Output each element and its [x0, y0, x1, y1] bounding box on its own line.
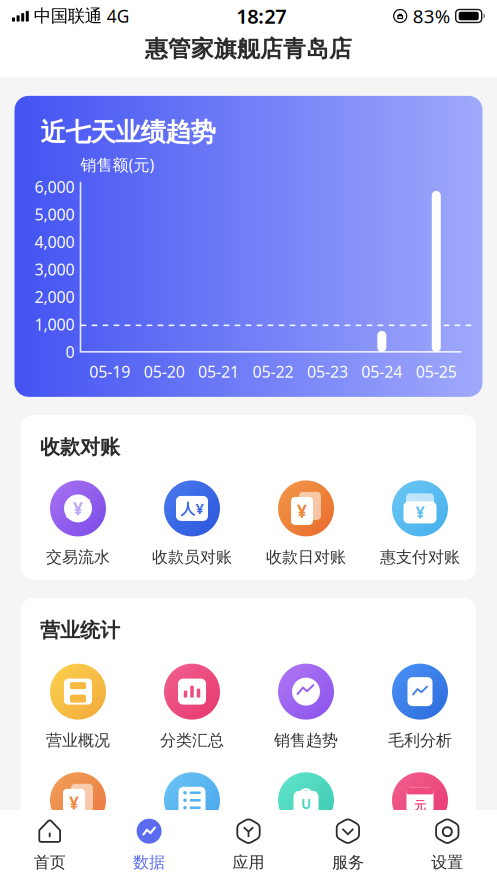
- staticText: 05-24: [361, 361, 402, 382]
- staticText: 05-25: [416, 361, 457, 382]
- staticText: 日报表: [396, 839, 444, 859]
- staticText: 销售额(元): [80, 154, 154, 175]
- staticText: 收款对账: [40, 435, 120, 459]
- staticText: 05-21: [198, 361, 239, 382]
- staticText: 分类汇总: [160, 731, 224, 750]
- staticText: 3,000: [34, 259, 74, 280]
- staticText: 营业统计: [40, 618, 120, 643]
- staticText: 应用: [232, 853, 264, 872]
- staticText: 05-23: [307, 361, 348, 382]
- button[interactable]: 分类汇总: [135, 664, 249, 750]
- staticText: 18:27: [236, 3, 286, 29]
- staticText: 05-19: [89, 361, 130, 382]
- button[interactable]: 营业概况: [21, 664, 135, 750]
- staticText: 首页: [34, 853, 66, 872]
- button[interactable]: 商品统计: [135, 772, 249, 859]
- staticText: 收款员对账: [152, 547, 232, 567]
- staticText: 数据: [133, 853, 165, 872]
- staticText: 05-20: [144, 361, 185, 382]
- button[interactable]: 销售趋势: [249, 664, 363, 750]
- staticText: 2,000: [34, 286, 74, 307]
- button[interactable]: 设置: [398, 807, 497, 883]
- staticText: ¥: [69, 791, 79, 814]
- button[interactable]: 首页: [0, 807, 99, 883]
- staticText: 4,000: [34, 231, 74, 252]
- button[interactable]: 元: [363, 772, 477, 859]
- button[interactable]: 数据: [99, 807, 199, 883]
- staticText: ¥: [73, 497, 83, 520]
- staticText: 收款日对账: [266, 547, 346, 567]
- staticText: 6,000: [34, 176, 74, 197]
- staticText: 商品统计: [160, 839, 224, 859]
- button[interactable]: ¥: [249, 480, 363, 567]
- staticText: 05-22: [252, 361, 293, 382]
- button[interactable]: U: [249, 772, 363, 859]
- staticText: 中国联通: [29, 5, 107, 27]
- staticText: 惠管家旗舰店青岛店: [145, 35, 352, 63]
- staticText: 设置: [431, 853, 463, 872]
- button[interactable]: 应用: [199, 807, 298, 883]
- staticText: 采购统计: [274, 839, 338, 859]
- staticText: 交易流水: [46, 547, 110, 567]
- staticText: ¥: [297, 499, 307, 522]
- staticText: 销售趋势: [274, 731, 338, 750]
- staticText: 5,000: [34, 204, 74, 225]
- staticText: 83%: [408, 4, 456, 28]
- staticText: ¥: [415, 502, 424, 523]
- button[interactable]: ¥: [363, 480, 477, 567]
- staticText: 元: [414, 798, 426, 813]
- staticText: 营业概况: [46, 731, 110, 750]
- button[interactable]: 毛利分析: [363, 664, 477, 750]
- staticText: 单品分析: [46, 839, 110, 859]
- staticText: 毛利分析: [388, 731, 452, 750]
- button[interactable]: ¥: [21, 480, 135, 567]
- staticText: 1,000: [34, 314, 74, 335]
- staticText: 4G: [107, 4, 130, 27]
- button[interactable]: ¥: [21, 772, 135, 859]
- staticText: 惠支付对账: [380, 547, 460, 567]
- button[interactable]: 人¥: [135, 480, 249, 567]
- staticText: 人¥: [180, 499, 203, 518]
- staticText: U: [301, 795, 311, 813]
- staticText: 近七天业绩趋势: [40, 117, 215, 148]
- button[interactable]: 服务: [298, 807, 398, 883]
- staticText: 服务: [332, 853, 364, 872]
- staticText: 0: [65, 341, 74, 362]
